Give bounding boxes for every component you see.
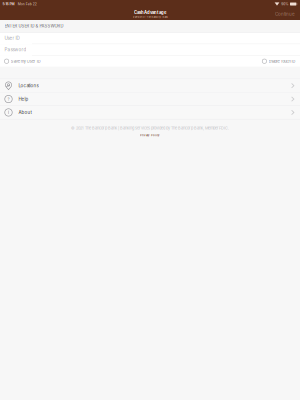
button[interactable]: Save my User ID xyxy=(4,57,41,65)
staticText: Save my User ID xyxy=(11,59,41,63)
button[interactable]: Privacy Policy xyxy=(140,134,160,137)
staticText: User ID xyxy=(4,35,19,41)
button[interactable]: i xyxy=(0,106,300,119)
staticText: Enable Touch ID xyxy=(269,59,296,63)
button[interactable]: Continue xyxy=(271,9,298,19)
button[interactable]: ? xyxy=(0,93,300,106)
button[interactable]: User ID xyxy=(0,33,300,44)
staticText: CashAdvantage xyxy=(134,10,166,15)
staticText: i xyxy=(8,110,9,115)
staticText: ? xyxy=(7,97,9,101)
button[interactable]: Password xyxy=(0,44,300,56)
staticText: Privacy Policy xyxy=(140,134,160,137)
button[interactable]: Locations xyxy=(0,79,300,93)
staticText: 5:16 PM xyxy=(3,2,15,6)
button[interactable]: Enable Touch ID xyxy=(262,57,296,65)
staticText: Locations xyxy=(18,83,38,88)
staticText: Mon Feb 22 xyxy=(18,2,37,6)
staticText: © 2021 The Bancorp Bank | Banking servic… xyxy=(71,126,229,130)
staticText: ENTER USER ID & PASSWORD xyxy=(5,24,64,29)
staticText: Continue xyxy=(275,11,295,17)
staticText: a service of The Bancorp Bank xyxy=(132,15,167,18)
staticText: About xyxy=(18,110,31,115)
staticText: 90% xyxy=(281,2,288,6)
staticText: Password xyxy=(4,47,26,52)
staticText: Help xyxy=(18,96,28,102)
